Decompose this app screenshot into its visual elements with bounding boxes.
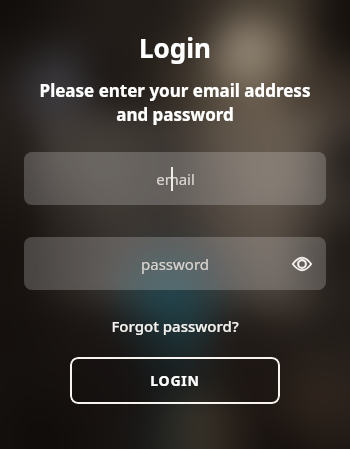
button[interactable]: Forgot password?: [111, 316, 239, 336]
staticText: email: [156, 169, 195, 189]
button[interactable]: password: [24, 237, 326, 290]
staticText: password: [141, 254, 209, 274]
staticText: Login: [139, 30, 211, 65]
staticText: Please enter your email address and pass…: [0, 79, 350, 126]
staticText: LOGIN: [150, 371, 200, 390]
button[interactable]: LOGIN: [70, 357, 280, 404]
button[interactable]: email: [24, 152, 326, 205]
